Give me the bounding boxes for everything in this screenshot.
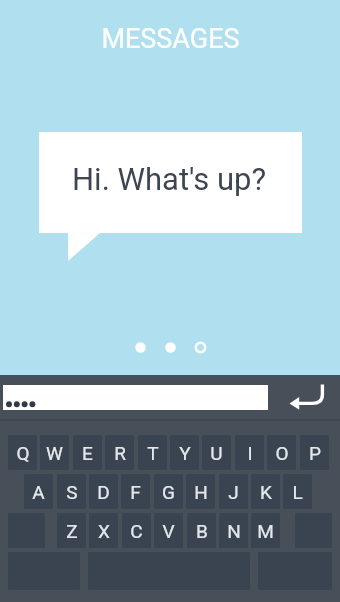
button[interactable]: A bbox=[24, 474, 53, 509]
button[interactable]: Message input bbox=[3, 385, 268, 410]
staticText: V bbox=[162, 520, 175, 542]
button[interactable]: V bbox=[154, 513, 183, 548]
staticText: C bbox=[130, 520, 143, 542]
staticText: N bbox=[227, 520, 241, 542]
button[interactable]: M bbox=[251, 513, 280, 548]
staticText: K bbox=[260, 481, 272, 503]
staticText: Z bbox=[66, 520, 78, 542]
staticText: MESSAGES bbox=[101, 23, 240, 55]
button[interactable]: Q bbox=[8, 435, 37, 470]
staticText: L bbox=[292, 481, 303, 503]
button[interactable]: E bbox=[73, 435, 102, 470]
button[interactable]: Send bbox=[276, 375, 340, 418]
staticText: D bbox=[97, 481, 110, 503]
staticText: U bbox=[210, 442, 223, 464]
button[interactable]: B bbox=[187, 513, 216, 548]
button[interactable]: T bbox=[138, 435, 167, 470]
staticText: J bbox=[228, 481, 239, 503]
button[interactable]: F bbox=[121, 474, 150, 509]
staticText: T bbox=[147, 442, 159, 464]
staticText: F bbox=[130, 481, 141, 503]
staticText: Y bbox=[179, 442, 191, 464]
staticText: H bbox=[194, 481, 208, 503]
button[interactable]: P bbox=[300, 435, 329, 470]
staticText: O bbox=[275, 442, 289, 464]
staticText: R bbox=[114, 442, 126, 464]
staticText: P bbox=[309, 442, 321, 464]
button[interactable]: G bbox=[154, 474, 183, 509]
staticText: A bbox=[32, 481, 45, 503]
button[interactable]: D bbox=[89, 474, 118, 509]
staticText: X bbox=[98, 520, 110, 542]
button[interactable]: R bbox=[105, 435, 134, 470]
staticText: W bbox=[46, 442, 63, 464]
staticText: Hi. What's up? bbox=[72, 161, 267, 197]
staticText: B bbox=[196, 520, 208, 542]
button[interactable]: W bbox=[40, 435, 69, 470]
button[interactable]: S bbox=[57, 474, 86, 509]
button[interactable]: O bbox=[267, 435, 296, 470]
button[interactable]: C bbox=[122, 513, 151, 548]
staticText: G bbox=[162, 481, 175, 503]
button[interactable]: H bbox=[186, 474, 215, 509]
button[interactable]: L bbox=[283, 474, 312, 509]
button[interactable]: N bbox=[219, 513, 248, 548]
button[interactable]: K bbox=[251, 474, 280, 509]
staticText: E bbox=[82, 442, 93, 464]
button[interactable]: J bbox=[219, 474, 248, 509]
button[interactable]: U bbox=[202, 435, 231, 470]
button[interactable]: X bbox=[89, 513, 118, 548]
button[interactable]: I bbox=[235, 435, 264, 470]
staticText: I bbox=[247, 442, 253, 464]
staticText: Q bbox=[16, 442, 30, 464]
staticText: M bbox=[257, 520, 274, 542]
staticText: S bbox=[66, 481, 78, 503]
button[interactable]: Y bbox=[170, 435, 199, 470]
button[interactable]: Z bbox=[57, 513, 86, 548]
